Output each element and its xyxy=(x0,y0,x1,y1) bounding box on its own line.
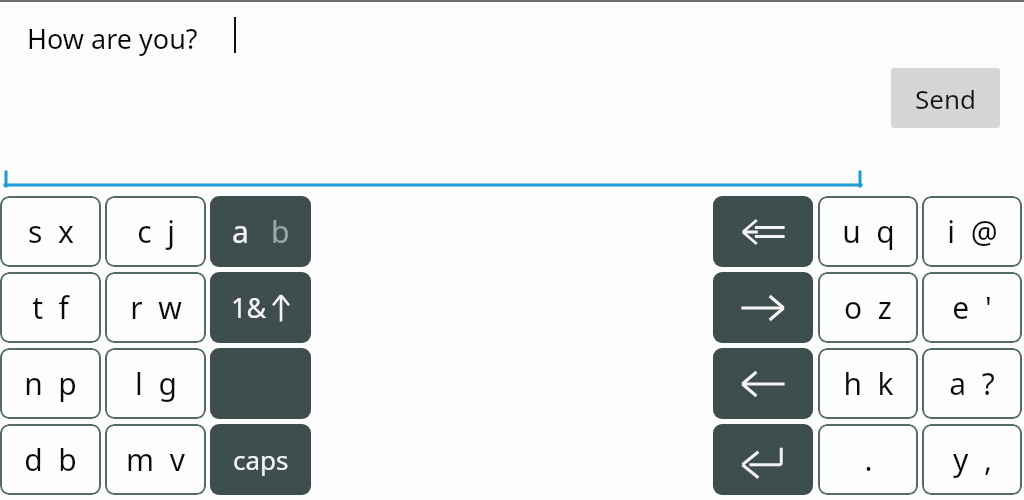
button[interactable]: d b xyxy=(0,424,101,495)
button[interactable]: Enter xyxy=(713,424,813,495)
button[interactable]: Cursor left xyxy=(713,348,813,419)
button[interactable]: s x xyxy=(0,196,101,267)
button[interactable]: Cursor right xyxy=(713,272,813,343)
staticText: m v xyxy=(126,439,185,480)
button[interactable]: t f xyxy=(0,272,101,343)
staticText: a xyxy=(232,211,249,252)
button[interactable]: Blank xyxy=(210,348,311,419)
staticText: n p xyxy=(24,363,77,404)
staticText: a ? xyxy=(949,363,995,404)
staticText: e ' xyxy=(952,287,992,328)
button[interactable]: l g xyxy=(105,348,206,419)
staticText: caps xyxy=(233,442,289,477)
button[interactable]: m v xyxy=(105,424,206,495)
staticText: o z xyxy=(844,287,892,328)
staticText: h k xyxy=(843,363,894,404)
button[interactable]: Symbols and shift xyxy=(210,272,311,343)
button[interactable]: How are you? xyxy=(27,16,327,60)
button[interactable]: . xyxy=(818,424,918,495)
staticText: l g xyxy=(135,363,177,404)
staticText: . xyxy=(864,439,873,480)
staticText: s x xyxy=(28,211,74,252)
staticText: How are you? xyxy=(27,20,198,57)
button[interactable]: n p xyxy=(0,348,101,419)
button[interactable]: r w xyxy=(105,272,206,343)
staticText: b xyxy=(271,211,290,252)
button[interactable]: a ? xyxy=(922,348,1022,419)
button[interactable]: u q xyxy=(818,196,918,267)
staticText: i @ xyxy=(947,211,998,252)
button[interactable]: e ' xyxy=(922,272,1022,343)
staticText: c j xyxy=(137,211,175,252)
button[interactable]: i @ xyxy=(922,196,1022,267)
button[interactable]: Send xyxy=(891,68,1000,128)
button[interactable]: Backspace xyxy=(713,196,813,267)
staticText: r w xyxy=(130,287,182,328)
staticText: t f xyxy=(32,287,69,328)
button[interactable]: Caps lock xyxy=(210,424,311,495)
staticText: y , xyxy=(953,439,992,480)
button[interactable]: Letters a b xyxy=(210,196,311,267)
button[interactable]: o z xyxy=(818,272,918,343)
button[interactable]: c j xyxy=(105,196,206,267)
staticText: 1& xyxy=(231,289,267,326)
staticText: d b xyxy=(24,439,77,480)
staticText: u q xyxy=(842,211,895,252)
staticText: Send xyxy=(915,81,976,116)
button[interactable]: h k xyxy=(818,348,918,419)
button[interactable]: y , xyxy=(922,424,1022,495)
